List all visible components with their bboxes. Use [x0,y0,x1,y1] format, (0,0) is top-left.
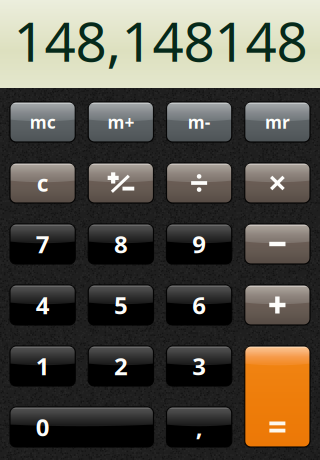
button[interactable]: mc [10,102,75,142]
button[interactable]: 0 [10,407,153,447]
button[interactable]: 3 [166,346,232,386]
button[interactable]: mr [245,102,310,142]
staticText: 0 [36,411,50,443]
staticText: mc [30,110,56,133]
staticText: 8 [114,228,128,260]
staticText: 9 [192,228,206,260]
button[interactable]: m plus [88,102,153,142]
staticText: m+ [107,110,134,133]
button[interactable]: 8 [88,224,153,264]
button[interactable]: 5 [88,285,153,325]
staticText: mr [265,110,290,133]
button[interactable]: Multiply [245,163,310,203]
staticText: c [37,168,49,198]
button[interactable]: Plus [245,285,310,325]
staticText: m- [188,110,211,133]
button[interactable]: 9 [166,224,232,264]
staticText: 5 [114,289,128,321]
button[interactable]: Divide [166,163,232,203]
button[interactable]: 2 [88,346,153,386]
button[interactable]: Minus [245,224,310,264]
staticText: 148,148148 [13,4,307,77]
button[interactable]: 1 [10,346,75,386]
staticText: 7 [36,228,50,260]
button[interactable]: 7 [10,224,75,264]
staticText: , [196,411,203,443]
button[interactable]: 4 [10,285,75,325]
button[interactable]: Plus minus [88,163,153,203]
button[interactable]: Equals [245,346,310,447]
staticText: 2 [114,350,128,382]
staticText: 4 [36,289,50,321]
staticText: 1 [36,350,50,382]
button[interactable]: m minus [166,102,232,142]
staticText: 3 [192,350,206,382]
button[interactable]: 6 [166,285,232,325]
button[interactable]: Clear [10,163,75,203]
staticText: 6 [192,289,206,321]
button[interactable]: Decimal separator [166,407,232,447]
